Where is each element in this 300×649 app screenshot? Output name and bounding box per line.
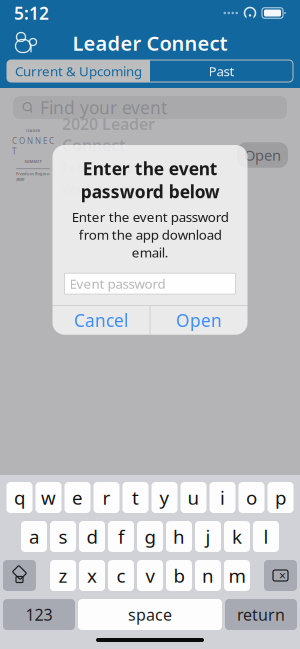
staticText: r <box>102 485 110 510</box>
button[interactable]: g <box>137 521 163 552</box>
staticText: f <box>118 524 124 549</box>
button[interactable]: p <box>267 482 293 513</box>
button[interactable]: b <box>166 560 192 591</box>
button[interactable]: q <box>6 482 32 513</box>
staticText: Enter the event password below <box>80 157 219 203</box>
staticText: q <box>14 485 25 510</box>
staticText: Open <box>176 309 222 332</box>
staticText: e <box>72 485 83 510</box>
button[interactable]: Event password <box>64 273 235 294</box>
button[interactable]: space <box>78 599 222 630</box>
button[interactable]: n <box>195 560 221 591</box>
button[interactable]: k <box>224 521 250 552</box>
staticText: 2020 Leader Connect <box>62 113 155 155</box>
button[interactable]: l <box>253 521 279 552</box>
staticText: Current & Upcoming <box>15 62 142 80</box>
button[interactable]: Open <box>150 306 247 335</box>
staticText: × <box>279 567 286 583</box>
button[interactable]: d <box>79 521 105 552</box>
staticText: j <box>205 524 210 549</box>
staticText: SUMMIT <box>24 159 41 164</box>
staticText: 5:12 <box>14 1 49 24</box>
button[interactable]: Past <box>150 60 293 82</box>
button[interactable]: u <box>180 482 206 513</box>
button[interactable]: Profile <box>8 26 44 60</box>
staticText: g <box>144 524 155 549</box>
button[interactable]: j <box>195 521 221 552</box>
staticText: Event password <box>69 275 165 292</box>
staticText: a <box>29 524 39 549</box>
button[interactable]: w <box>35 482 61 513</box>
staticText: Past <box>208 62 234 80</box>
staticText: h <box>173 524 185 549</box>
button[interactable]: f <box>108 521 134 552</box>
button[interactable]: Current & Upcoming <box>7 60 150 82</box>
staticText: l <box>263 524 268 549</box>
staticText: Feb 18, 2020 <box>62 158 143 176</box>
staticText: m <box>228 563 245 588</box>
button[interactable]: Find your event <box>13 96 287 119</box>
button[interactable]: c <box>108 560 134 591</box>
staticText: Open <box>244 145 281 165</box>
button[interactable]: y <box>151 482 177 513</box>
staticText: Enter the event password from the app do… <box>71 208 228 261</box>
staticText: t <box>132 485 139 510</box>
staticText: C O N N E C T <box>12 136 54 157</box>
staticText: y <box>159 485 169 510</box>
button[interactable]: h <box>166 521 192 552</box>
button[interactable]: v <box>137 560 163 591</box>
button[interactable]: return <box>225 599 297 630</box>
staticText: d <box>86 524 97 549</box>
button[interactable]: i <box>209 482 235 513</box>
staticText: Find your event <box>40 96 167 119</box>
button[interactable]: Shift <box>3 560 36 591</box>
button[interactable]: o <box>238 482 264 513</box>
staticText: o <box>246 485 257 510</box>
staticText: Leader Connect <box>72 30 227 56</box>
staticText: Washington, DC <box>62 179 160 197</box>
button[interactable]: z <box>50 560 76 591</box>
staticText: return <box>237 604 285 625</box>
button[interactable]: x <box>79 560 105 591</box>
button[interactable]: LEADER <box>0 127 300 183</box>
staticText: Freedom Region 2020 <box>16 171 50 182</box>
button[interactable]: e <box>64 482 90 513</box>
button[interactable]: r <box>93 482 119 513</box>
button[interactable]: t <box>122 482 148 513</box>
staticText: LEADER <box>25 128 40 134</box>
staticText: Cancel <box>74 309 128 332</box>
staticText: z <box>58 563 67 588</box>
staticText: u <box>187 485 199 510</box>
staticText: s <box>58 524 67 549</box>
staticText: k <box>232 524 242 549</box>
staticText: b <box>173 563 184 588</box>
staticText: c <box>116 563 125 588</box>
staticText: x <box>87 563 97 588</box>
staticText: space <box>128 604 172 625</box>
staticText: p <box>275 485 286 510</box>
staticText: v <box>145 563 154 588</box>
button[interactable]: Delete <box>264 560 297 591</box>
staticText: w <box>41 485 56 510</box>
button[interactable]: s <box>50 521 76 552</box>
button[interactable]: 123 <box>3 599 75 630</box>
button[interactable]: a <box>21 521 47 552</box>
staticText: n <box>202 563 214 588</box>
staticText: i <box>220 485 225 510</box>
staticText: 123 <box>25 604 52 625</box>
button[interactable]: m <box>224 560 250 591</box>
button[interactable]: Cancel <box>52 306 150 335</box>
